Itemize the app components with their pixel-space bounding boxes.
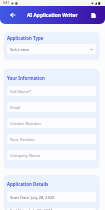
button[interactable]: End Date: July 29, 2025 — [7, 208, 96, 210]
staticText: Contact Number — [10, 121, 42, 126]
staticText: Your Position — [10, 137, 35, 142]
staticText: Application Type — [7, 35, 44, 41]
button[interactable]: Email — [7, 102, 96, 112]
staticText: End Date: July 29, 2025 — [10, 208, 53, 210]
staticText: AI Application Writer — [27, 12, 78, 19]
staticText: Your Information — [7, 75, 45, 81]
button[interactable]: Sick Leave — [7, 44, 96, 54]
staticText: Start Date: July 28, 2025 — [10, 195, 55, 200]
staticText: Company Name — [10, 153, 41, 158]
button[interactable]: Start Date: July 28, 2025 — [7, 192, 96, 202]
staticText: Email — [10, 105, 21, 110]
button[interactable]: Contact Number — [7, 118, 96, 128]
staticText: Full Name* — [10, 89, 32, 94]
button[interactable]: Company Name — [7, 150, 96, 160]
button[interactable]: Save — [89, 11, 98, 20]
staticText: 9:41 — [3, 1, 9, 5]
staticText: Sick Leave — [10, 47, 30, 52]
button[interactable]: Back — [7, 10, 17, 20]
staticText: Application Details — [7, 181, 49, 187]
button[interactable]: Full Name* — [7, 86, 96, 96]
button[interactable]: Your Position — [7, 134, 96, 144]
